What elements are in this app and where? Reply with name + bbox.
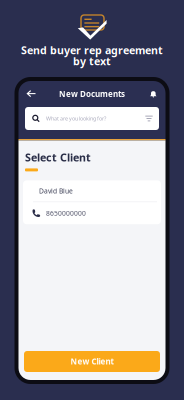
staticText: 8650000000 <box>46 209 86 218</box>
staticText: New Documents <box>59 89 125 99</box>
staticText: Send buyer rep agreement <box>21 43 163 57</box>
staticText: New Client <box>70 356 113 367</box>
button[interactable]: Notifications <box>131 84 157 103</box>
button[interactable]: 8650000000 <box>23 202 161 224</box>
staticText: David Blue <box>39 186 73 195</box>
button[interactable]: Filter <box>142 111 153 125</box>
button[interactable]: David Blue <box>23 180 161 201</box>
staticText: by text <box>73 54 111 68</box>
button[interactable]: New Client <box>24 351 160 372</box>
staticText: What are you looking for? <box>46 115 106 122</box>
button[interactable]: Back <box>26 84 52 103</box>
staticText: Select Client <box>25 150 91 164</box>
